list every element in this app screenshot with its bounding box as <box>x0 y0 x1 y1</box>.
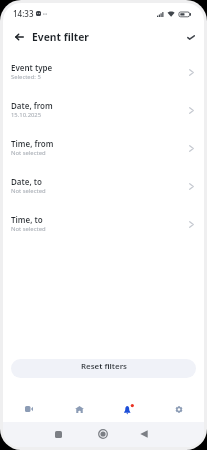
staticText: Event type <box>11 62 53 73</box>
button[interactable]: Home <box>54 396 104 422</box>
button[interactable]: Time, from <box>3 129 204 167</box>
button[interactable]: Home <box>92 426 113 442</box>
button[interactable]: Event type <box>3 53 204 91</box>
staticText: Date, to <box>11 176 42 187</box>
button[interactable]: Back <box>133 427 154 441</box>
staticText: 14:33 <box>13 8 34 19</box>
staticText: Date, from <box>11 100 53 111</box>
staticText: Not selected <box>11 149 46 157</box>
button[interactable]: Time, to <box>3 205 204 243</box>
button[interactable]: Settings <box>154 396 204 422</box>
button[interactable]: Back <box>3 24 32 50</box>
button[interactable]: Notifications <box>104 396 154 422</box>
button[interactable]: Date, to <box>3 167 204 205</box>
staticText: Not selected <box>11 225 46 233</box>
staticText: Reset filters <box>81 361 127 372</box>
staticText: Event filter <box>32 30 89 44</box>
button[interactable]: Recents <box>48 427 69 441</box>
button[interactable]: Apply <box>179 24 203 50</box>
staticText: Time, from <box>11 138 54 149</box>
staticText: Time, to <box>11 214 43 225</box>
button[interactable]: Date, from <box>3 91 204 129</box>
button[interactable]: Reset filters <box>11 359 196 378</box>
button[interactable]: Video <box>3 396 54 422</box>
staticText: Not selected <box>11 187 46 195</box>
staticText: 15.10.2025 <box>11 111 42 119</box>
staticText: Selected: 5 <box>11 73 41 81</box>
